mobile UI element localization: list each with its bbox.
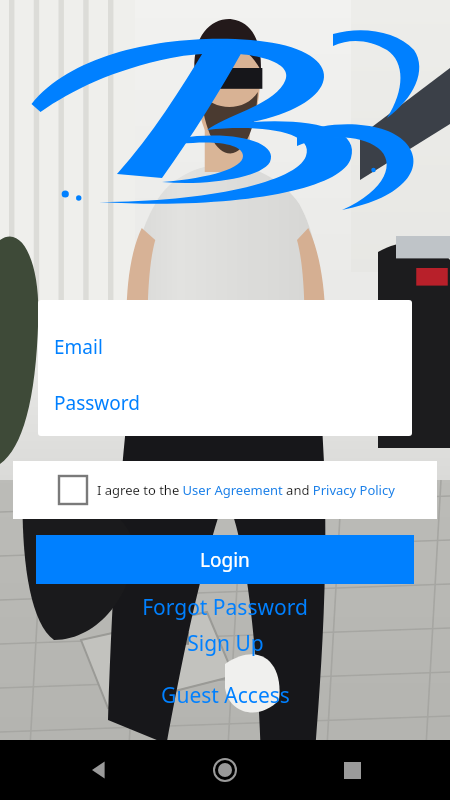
button[interactable]: Email [54, 326, 412, 368]
button[interactable]: Sign Up [0, 628, 450, 658]
button[interactable]: Recent apps [324, 742, 380, 798]
button[interactable]: I agree to the User Agreement and Privac… [13, 461, 437, 519]
button[interactable]: Back [71, 742, 127, 798]
button[interactable]: Guest Access [0, 680, 450, 710]
staticText: Email [54, 334, 103, 360]
button[interactable]: Home [197, 742, 253, 798]
button[interactable]: Password [54, 382, 412, 424]
button[interactable]: Login [36, 535, 414, 584]
staticText: I agree to the User Agreement and Privac… [97, 481, 395, 499]
staticText: Guest Access [161, 681, 290, 710]
staticText: Login [200, 547, 250, 573]
staticText: Password [54, 390, 140, 416]
staticText: Forgot Password [142, 593, 308, 622]
staticText: Sign Up [187, 629, 264, 658]
button[interactable]: Forgot Password [0, 592, 450, 622]
